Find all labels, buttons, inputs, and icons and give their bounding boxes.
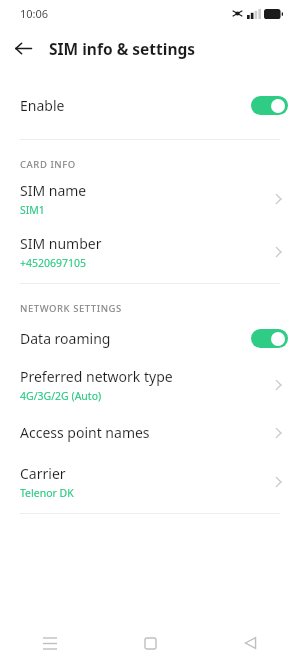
button[interactable]: Enable <box>0 87 300 123</box>
staticText: Preferred network type <box>20 367 173 386</box>
staticText: NETWORK SETTINGS <box>20 302 122 315</box>
staticText: 4G/3G/2G (Auto) <box>20 389 102 403</box>
button[interactable]: Preferred network type <box>0 363 300 406</box>
staticText: SIM number <box>20 234 102 253</box>
button[interactable]: Toggle on <box>251 329 288 348</box>
button[interactable]: Data roaming <box>0 321 300 355</box>
button[interactable]: SIM name <box>0 177 300 220</box>
button[interactable]: Home <box>100 621 200 665</box>
button[interactable]: Back <box>200 621 300 665</box>
staticText: 10:06 <box>20 6 49 21</box>
staticText: SIM info & settings <box>49 38 196 59</box>
staticText: Data roaming <box>20 329 251 348</box>
button[interactable]: Toggle on <box>251 96 288 115</box>
staticText: Carrier <box>20 464 66 483</box>
staticText: Access point names <box>20 423 150 442</box>
button[interactable]: Carrier <box>0 460 300 503</box>
button[interactable]: Access point names <box>0 416 300 449</box>
button[interactable]: Recent apps <box>0 621 100 665</box>
staticText: +4520697105 <box>20 256 87 270</box>
button[interactable]: Back <box>10 35 37 62</box>
staticText: Enable <box>20 96 251 115</box>
staticText: Telenor DK <box>20 486 74 500</box>
staticText: CARD INFO <box>20 158 76 171</box>
staticText: SIM1 <box>20 203 45 217</box>
staticText: SIM name <box>20 181 87 200</box>
button[interactable]: SIM number <box>0 230 300 273</box>
